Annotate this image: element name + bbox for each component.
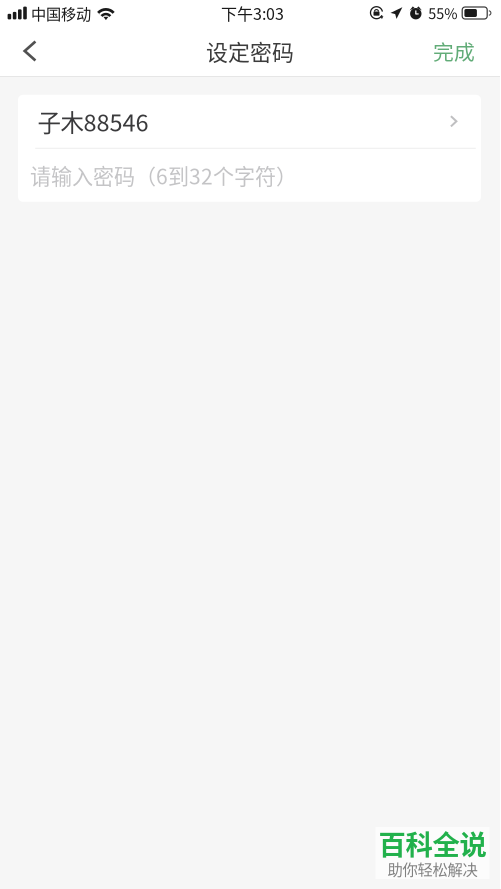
staticText: 下午3:03	[221, 1, 284, 25]
staticText: 百科全说	[378, 823, 486, 863]
button[interactable]: 返回	[7, 26, 53, 76]
staticText: 中国移动	[31, 2, 91, 24]
staticText: 请输入密码（6到32个字符）	[30, 160, 297, 190]
button[interactable]: 请输入密码（6到32个字符）	[18, 149, 481, 202]
staticText: 助你轻松解决	[387, 857, 477, 880]
staticText: 设定密码	[206, 35, 294, 67]
staticText: 子木88546	[37, 104, 148, 138]
button[interactable]: 完成	[422, 26, 486, 76]
button[interactable]: 子木88546	[18, 95, 481, 148]
staticText: 完成	[433, 36, 475, 66]
staticText: 55%	[428, 3, 457, 23]
